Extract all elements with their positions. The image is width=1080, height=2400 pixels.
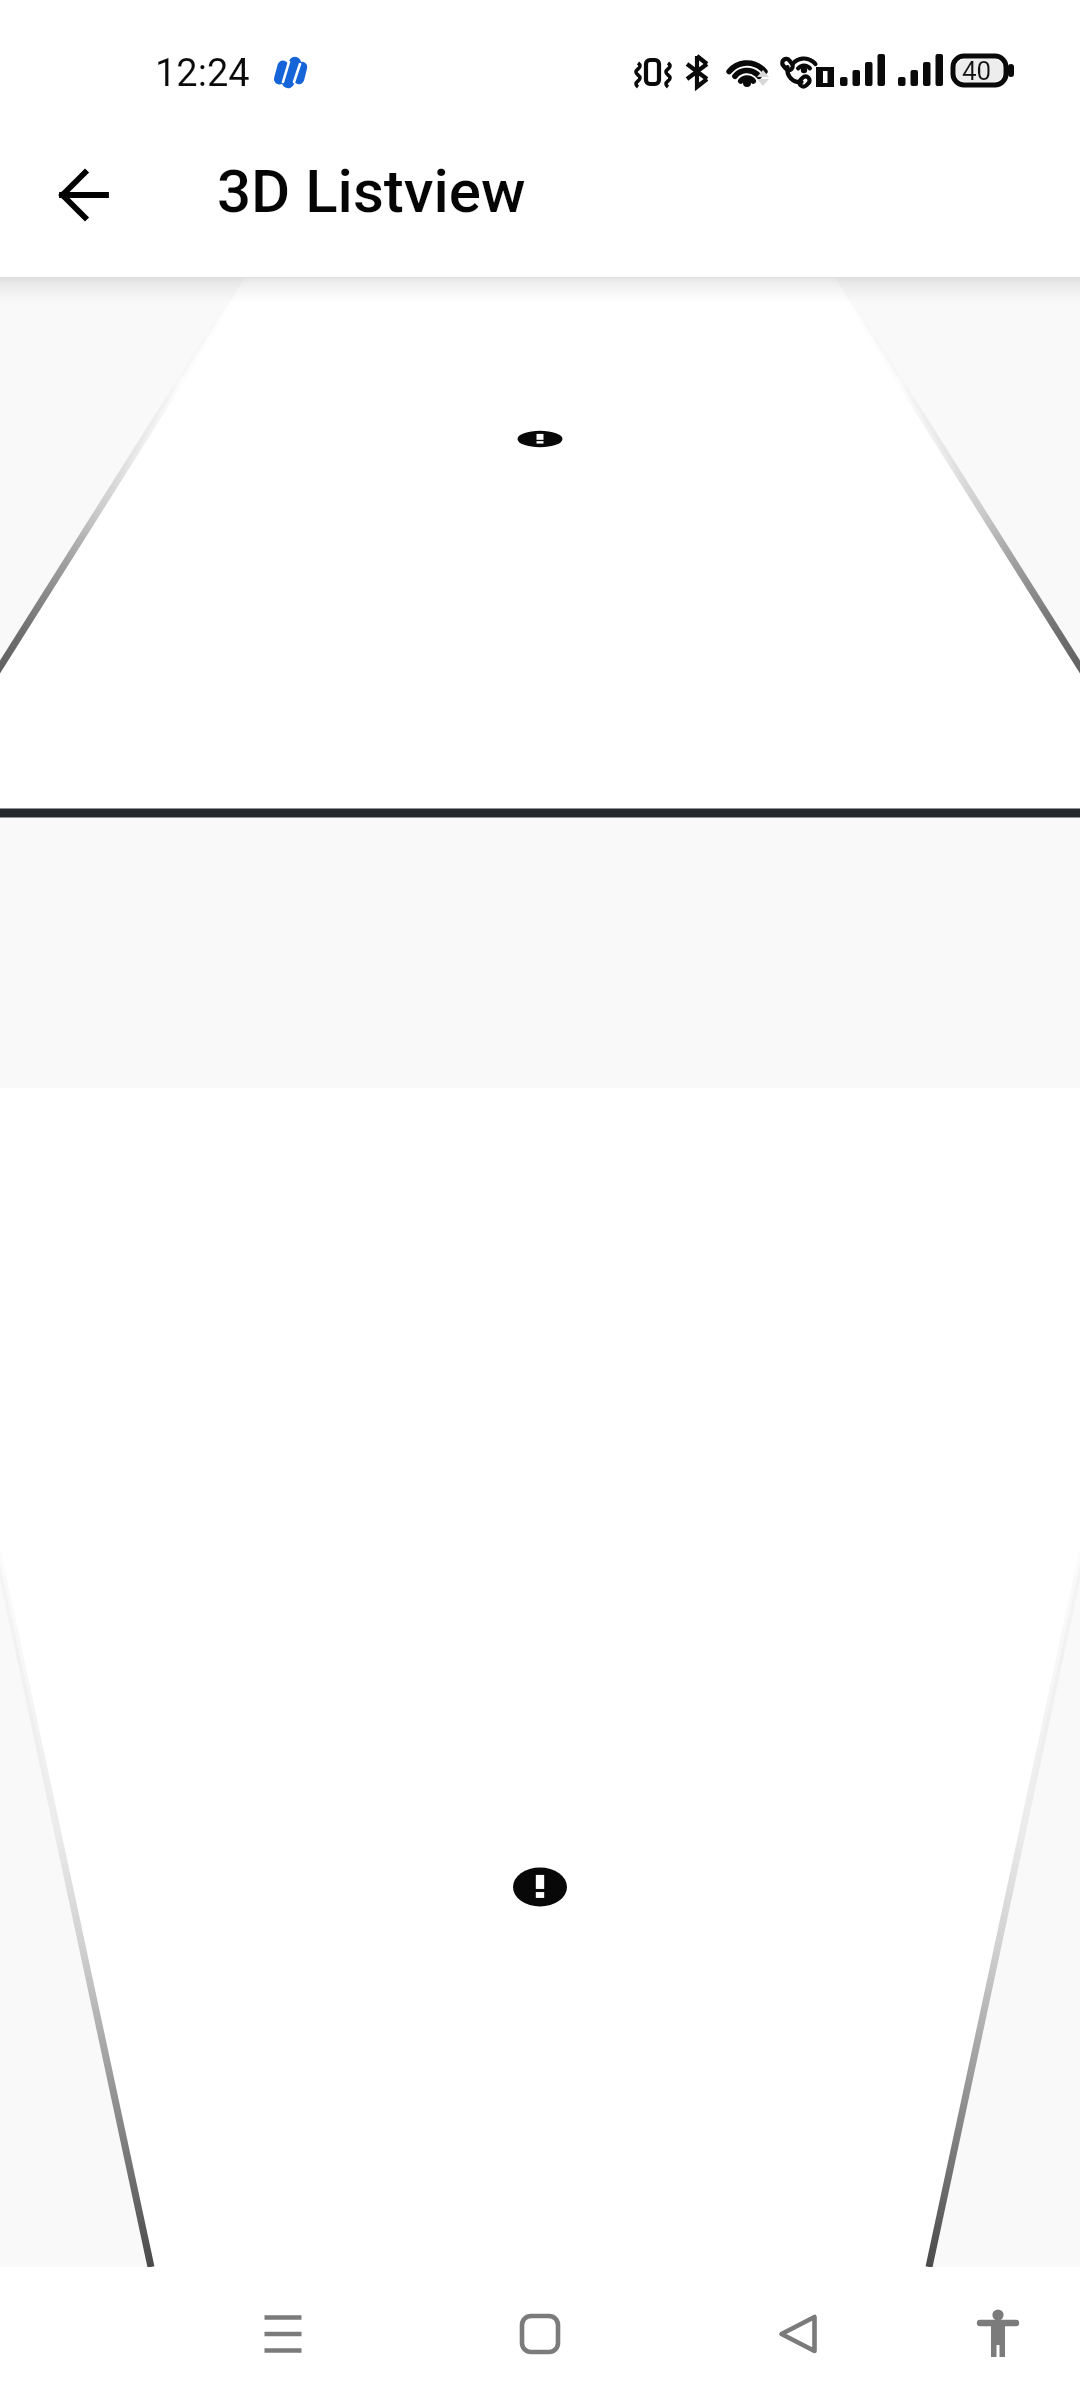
button[interactable]: Recents (228, 2279, 338, 2389)
button[interactable]: Back (743, 2279, 853, 2389)
staticText: 40 (962, 56, 992, 86)
button[interactable]: Accessibility (943, 2279, 1053, 2389)
staticText: 3D Listview (217, 156, 526, 226)
button[interactable]: List item 2 (0, 0, 1080, 2400)
staticText: 12:24 (155, 51, 250, 96)
button[interactable]: Home (485, 2279, 595, 2389)
button[interactable]: List item 1 (0, 0, 1080, 2400)
button[interactable]: Navigate up (38, 150, 128, 240)
